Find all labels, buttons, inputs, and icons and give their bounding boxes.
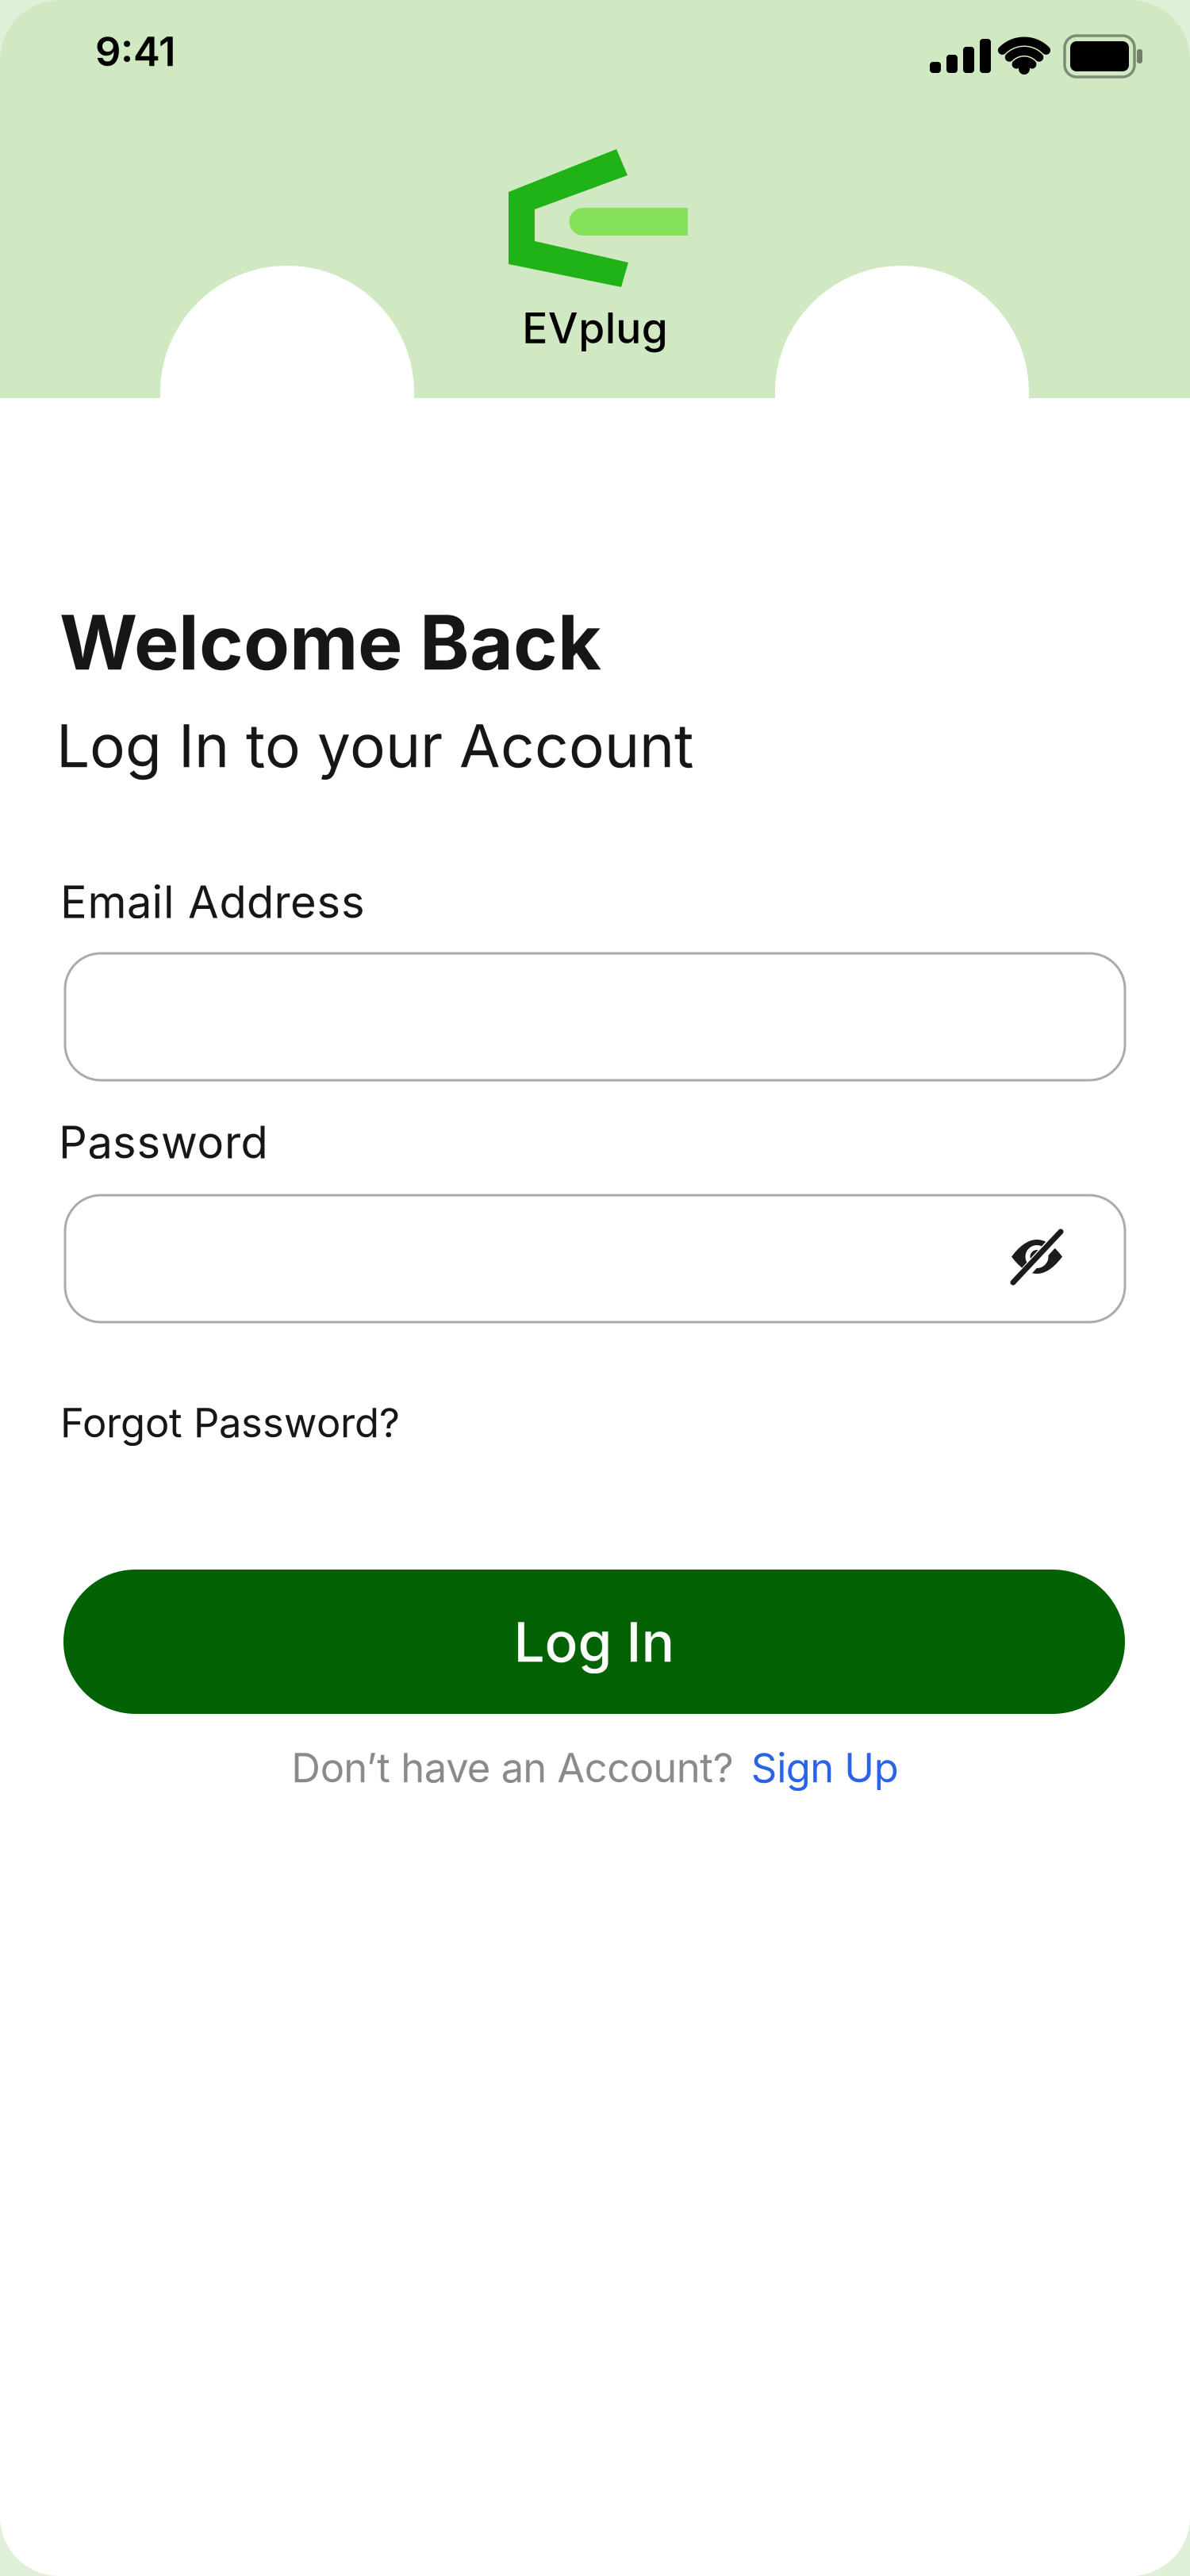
button[interactable] [65,1195,1125,1322]
button[interactable]: Forgot Password? [60,1399,400,1446]
staticText: Password [59,1116,268,1168]
staticText: Sign Up [751,1744,899,1791]
staticText: Welcome Back [59,598,601,687]
staticText: Log In [514,1609,675,1674]
staticText: Log In to your Account [56,711,693,780]
button[interactable]: Log In [63,1570,1125,1714]
button[interactable]: Sign Up [751,1744,899,1791]
staticText: 9:41 [95,28,175,75]
staticText: Forgot Password? [60,1399,400,1446]
staticText: Email Address [60,876,365,928]
staticText: EVplug [522,303,668,353]
staticText: Don’t have an Account? [291,1744,734,1791]
button[interactable] [65,953,1125,1080]
